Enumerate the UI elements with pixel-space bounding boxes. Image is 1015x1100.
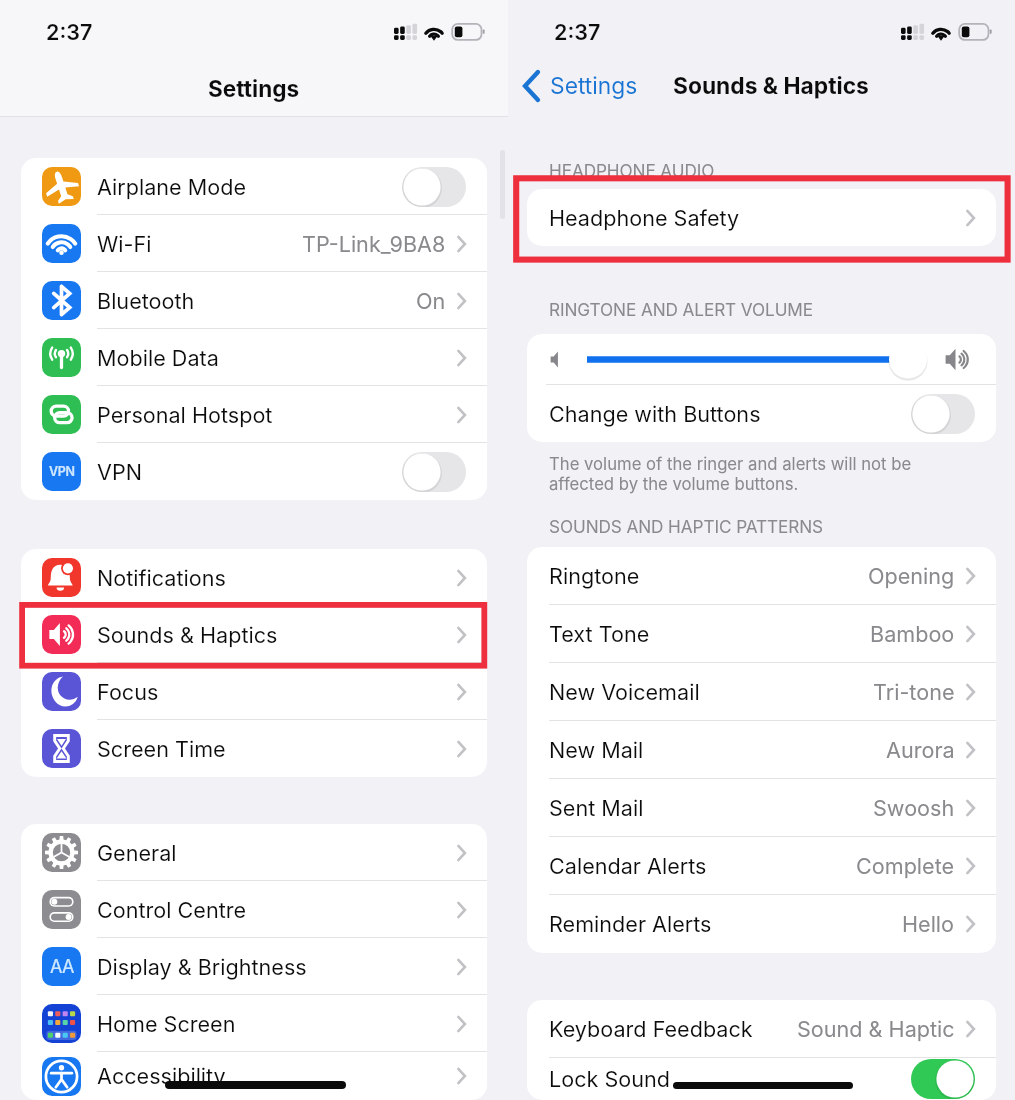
staticText: Text Tone [549,621,870,647]
staticText: Complete [856,853,955,879]
staticText: SOUNDS AND HAPTIC PATTERNS [549,516,823,537]
staticText: Settings [550,72,638,100]
staticText: Opening [868,563,955,589]
staticText: Keyboard Feedback [549,1016,797,1042]
button[interactable]: General [21,824,487,881]
button[interactable]: Toggle off [402,452,466,492]
button[interactable]: Mobile Data [21,329,487,386]
staticText: Focus [97,679,457,705]
staticText: Bamboo [870,621,955,647]
staticText: Headphone Safety [549,205,966,231]
button[interactable]: Ringtone [527,547,996,605]
staticText: Screen Time [97,736,457,762]
button[interactable]: Change with Buttons [527,385,996,442]
button[interactable]: Toggle off [402,167,466,207]
button[interactable]: Ringtone and alert volume slider [527,334,996,385]
button[interactable]: Focus [21,663,487,720]
button[interactable]: Personal Hotspot [21,386,487,443]
staticText: VPN [49,464,75,479]
staticText: Aurora [886,737,955,763]
staticText: Calendar Alerts [549,853,856,879]
staticText: Change with Buttons [549,401,911,427]
staticText: Hello [902,911,955,937]
button[interactable]: New Mail [527,721,996,779]
staticText: Display & Brightness [97,954,457,980]
staticText: Sent Mail [549,795,873,821]
button[interactable]: AA [21,938,487,995]
staticText: The volume of the ringer and alerts will… [549,454,912,494]
button[interactable]: Screen Time [21,720,487,777]
button[interactable]: Control Centre [21,881,487,938]
staticText: Lock Sound [549,1066,911,1092]
staticText: Bluetooth [97,288,416,314]
button[interactable]: Wi-Fi [21,215,487,272]
button[interactable]: Sent Mail [527,779,996,837]
staticText: HEADPHONE AUDIO [549,160,715,181]
staticText: Swoosh [873,795,955,821]
staticText: Personal Hotspot [97,402,457,428]
button[interactable]: Accessibility [21,1052,487,1100]
button[interactable]: Airplane Mode [21,158,487,215]
staticText: VPN [97,459,402,485]
staticText: Ringtone [549,563,868,589]
staticText: Mobile Data [97,345,457,371]
button[interactable]: Notifications [21,549,487,606]
staticText: Sounds & Haptics [97,622,457,648]
staticText: AA [50,956,74,978]
button[interactable]: Bluetooth [21,272,487,329]
button[interactable]: Reminder Alerts [527,895,996,953]
button[interactable]: Toggle off [911,394,975,434]
staticText: Reminder Alerts [549,911,902,937]
staticText: Airplane Mode [97,174,402,200]
staticText: New Voicemail [549,679,873,705]
staticText: Control Centre [97,897,457,923]
staticText: Sound & Haptic [797,1016,955,1042]
staticText: On [416,288,446,314]
staticText: General [97,840,457,866]
staticText: TP-Link_9BA8 [302,231,446,257]
staticText: 2:37 [46,19,93,45]
staticText: RINGTONE AND ALERT VOLUME [549,299,814,320]
button[interactable]: Back to Settings [518,67,643,105]
button[interactable]: Toggle on [911,1059,975,1099]
button[interactable]: Headphone Safety [527,189,996,246]
staticText: Accessibility [97,1063,457,1089]
button[interactable]: Keyboard Feedback [527,1000,996,1058]
staticText: Wi-Fi [97,231,302,257]
staticText: New Mail [549,737,886,763]
button[interactable]: New Voicemail [527,663,996,721]
staticText: Settings [208,75,300,102]
staticText: Tri-tone [873,679,955,705]
button[interactable]: Text Tone [527,605,996,663]
staticText: Notifications [97,565,457,591]
button[interactable]: VPN [21,443,487,500]
button[interactable]: Home Screen [21,995,487,1052]
staticText: Home Screen [97,1011,457,1037]
staticText: Sounds & Haptics [673,72,869,100]
button[interactable]: Calendar Alerts [527,837,996,895]
button[interactable]: Sounds & Haptics [21,606,487,663]
button[interactable]: Lock Sound [527,1058,996,1100]
staticText: 2:37 [554,19,601,45]
